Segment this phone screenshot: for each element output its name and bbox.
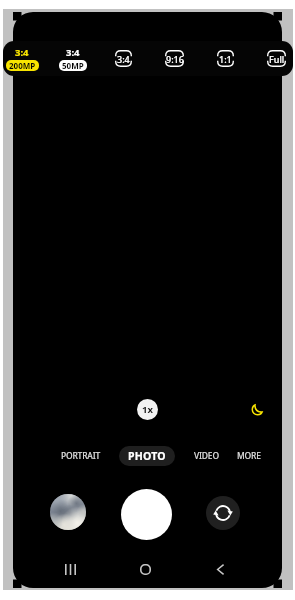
button[interactable]: Take photo (121, 489, 172, 540)
button[interactable]: 3:4 (52, 46, 94, 71)
button[interactable]: Gallery (50, 494, 86, 530)
button[interactable]: PORTRAIT (52, 446, 110, 466)
button[interactable]: PHOTO (119, 446, 175, 466)
staticText: 1:1 (219, 53, 232, 65)
staticText: 3:4 (117, 53, 130, 65)
staticText: 50MP (62, 60, 84, 71)
button[interactable]: Home (133, 557, 157, 581)
staticText: 3:4 (15, 46, 29, 59)
button[interactable]: VIDEO (177, 446, 235, 466)
staticText: PHOTO (128, 449, 166, 463)
staticText: Full (269, 53, 285, 65)
button[interactable]: 3:4 (115, 50, 132, 67)
button[interactable]: 3:4 (3, 46, 43, 71)
button[interactable]: 1:1 (217, 50, 234, 67)
staticText: 1x (142, 403, 153, 416)
staticText: PORTRAIT (61, 450, 101, 462)
staticText: 200MP (9, 60, 36, 71)
button[interactable]: MORE (220, 446, 278, 466)
staticText: VIDEO (194, 450, 219, 462)
button[interactable]: Recent apps (58, 557, 82, 581)
button[interactable]: 1x (137, 399, 158, 420)
staticText: 3:4 (66, 46, 80, 59)
button[interactable]: 9:16 (165, 50, 184, 67)
staticText: MORE (237, 450, 261, 462)
button[interactable]: Night mode (249, 401, 266, 418)
staticText: 9:16 (166, 53, 184, 65)
button[interactable]: Full (267, 50, 286, 67)
button[interactable]: Switch camera (206, 496, 240, 530)
button[interactable]: Back (208, 557, 232, 581)
